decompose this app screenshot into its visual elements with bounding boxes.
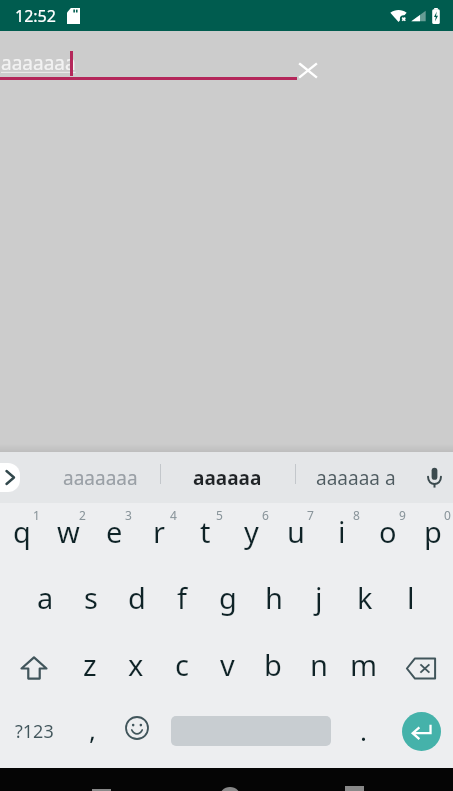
staticText: r [153, 512, 165, 551]
staticText: c [175, 645, 189, 684]
button[interactable]: Backspace [388, 638, 453, 698]
staticText: u [287, 512, 305, 551]
button[interactable]: a [22, 567, 68, 627]
button[interactable]: b [250, 634, 296, 694]
button[interactable]: aaaaaa a [296, 452, 416, 503]
staticText: j [315, 578, 323, 617]
staticText: 4 [170, 507, 177, 523]
staticText: ?123 [15, 719, 54, 744]
button[interactable]: k [342, 567, 388, 627]
button[interactable]: w [45, 501, 91, 561]
button[interactable]: d [114, 567, 160, 627]
staticText: aaaaaa a [316, 465, 396, 491]
button[interactable]: Emoji [114, 698, 159, 758]
staticText: o [379, 512, 397, 551]
staticText: aaaaaaa [63, 465, 138, 491]
staticText: e [106, 512, 123, 551]
button[interactable]: n [296, 634, 342, 694]
staticText: 3 [125, 507, 132, 523]
button[interactable]: z [67, 634, 113, 694]
button[interactable]: . [341, 700, 386, 760]
button[interactable]: v [204, 634, 250, 694]
button[interactable]: aaaaaaa [40, 452, 160, 503]
button[interactable]: l [388, 567, 434, 627]
staticText: a [37, 578, 54, 617]
staticText: b [264, 645, 282, 684]
staticText: s [84, 578, 98, 617]
staticText: 0 [444, 507, 451, 523]
button[interactable]: Voice input [415, 452, 453, 503]
button[interactable]: Enter [390, 701, 453, 761]
button[interactable]: q [0, 501, 45, 561]
button[interactable]: e [91, 501, 137, 561]
staticText: v [220, 645, 235, 684]
button[interactable]: r [136, 501, 182, 561]
button[interactable]: i [319, 501, 365, 561]
staticText: w [57, 512, 80, 551]
button[interactable]: p [410, 501, 453, 561]
button[interactable]: f [159, 567, 205, 627]
staticText: 5 [216, 507, 223, 523]
staticText: m [350, 645, 378, 684]
staticText: 6 [262, 507, 269, 523]
button[interactable]: aaaaaa [167, 452, 287, 503]
staticText: g [219, 578, 237, 617]
staticText: aaaaaaa [1, 50, 76, 76]
button[interactable]: ?123 [0, 701, 68, 761]
button[interactable]: y [228, 501, 274, 561]
staticText: k [357, 578, 373, 617]
button[interactable]: x [113, 634, 159, 694]
button[interactable]: Shift [0, 638, 68, 698]
button[interactable]: o [365, 501, 411, 561]
staticText: , [89, 712, 96, 747]
staticText: 8 [353, 507, 360, 523]
button[interactable]: g [205, 567, 251, 627]
staticText: y [244, 512, 259, 551]
button[interactable]: u [273, 501, 319, 561]
staticText: 2 [79, 507, 86, 523]
button[interactable]: t [182, 501, 228, 561]
staticText: 9 [399, 507, 406, 523]
button[interactable]: h [251, 567, 297, 627]
staticText: 1 [33, 507, 40, 523]
staticText: . [360, 713, 367, 748]
button[interactable]: s [68, 567, 114, 627]
button[interactable]: c [159, 634, 205, 694]
button[interactable]: Clear search [289, 51, 327, 89]
button[interactable]: j [296, 567, 342, 627]
staticText: f [177, 578, 187, 617]
staticText: p [424, 512, 442, 551]
staticText: 7 [307, 507, 314, 523]
staticText: n [310, 645, 328, 684]
button[interactable]: Home [219, 787, 241, 791]
staticText: d [128, 578, 146, 617]
staticText: i [338, 512, 346, 551]
staticText: aaaaaa [193, 465, 262, 491]
button[interactable]: m [341, 634, 387, 694]
staticText: 12:52 [15, 5, 56, 27]
button[interactable]: , [70, 699, 115, 759]
staticText: q [13, 512, 31, 551]
button[interactable]: Expand toolbar [0, 463, 20, 492]
staticText: x [128, 645, 144, 684]
staticText: l [407, 578, 415, 617]
staticText: t [200, 512, 211, 551]
staticText: z [83, 645, 97, 684]
staticText: h [265, 578, 283, 617]
